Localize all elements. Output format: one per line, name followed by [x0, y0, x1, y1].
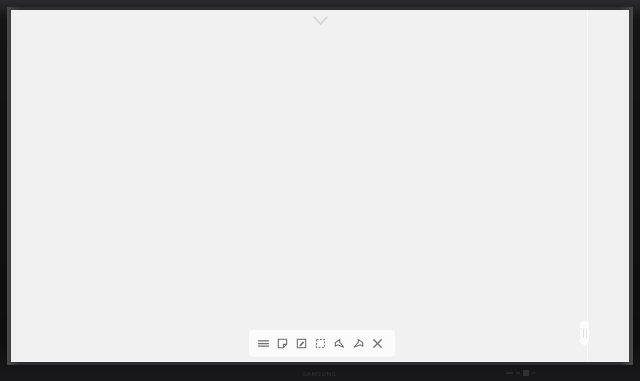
staticText: SAMSUNG	[303, 370, 337, 378]
button[interactable]: Undo	[332, 331, 347, 356]
button[interactable]: Insert image	[294, 331, 309, 356]
button[interactable]: Close	[370, 331, 385, 356]
button[interactable]: Open side panel	[580, 321, 589, 345]
button[interactable]: New note	[275, 331, 290, 356]
button[interactable]: Redo	[351, 331, 366, 356]
button[interactable]: Select area	[313, 331, 328, 356]
button[interactable]: Menu	[256, 331, 271, 356]
button[interactable]: Show top menu	[301, 12, 339, 28]
